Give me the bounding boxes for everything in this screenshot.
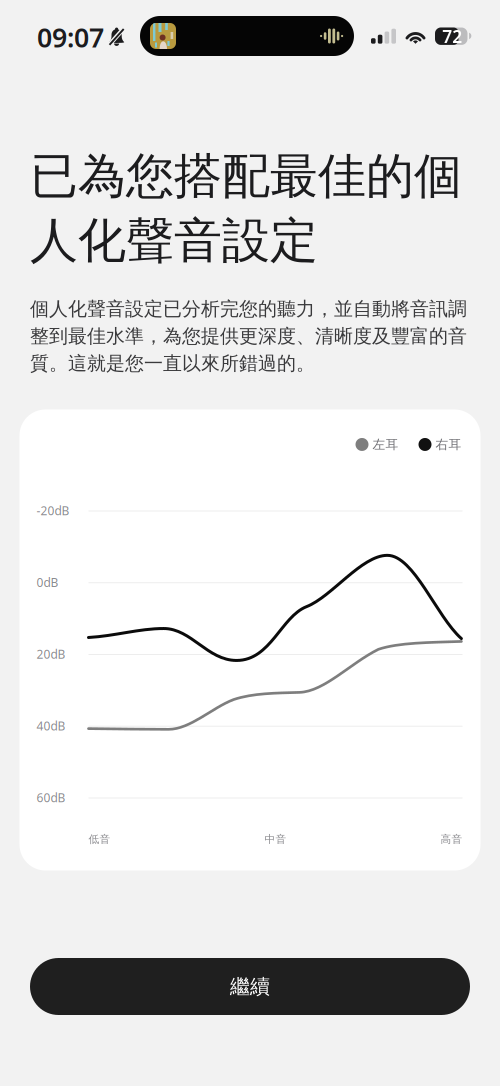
staticText: 低音: [88, 832, 110, 846]
staticText: 高音: [440, 832, 462, 846]
staticText: 已為您搭配最佳的個人化聲音設定: [30, 146, 462, 271]
staticText: 右耳: [435, 436, 461, 452]
staticText: 0dB: [36, 574, 58, 590]
staticText: 60dB: [36, 789, 65, 806]
staticText: 20dB: [36, 646, 65, 662]
staticText: 72: [442, 24, 462, 48]
staticText: 中音: [264, 832, 286, 846]
staticText: 左耳: [372, 436, 398, 452]
staticText: 個人化聲音設定已分析完您的聽力，並自動將音訊調整到最佳水準，為您提供更深度、清晰…: [30, 297, 467, 375]
staticText: 繼續: [230, 974, 270, 999]
staticText: -20dB: [36, 502, 69, 519]
staticText: 40dB: [36, 718, 65, 734]
staticText: 09:07: [37, 19, 104, 55]
button[interactable]: 繼續: [30, 958, 470, 1015]
